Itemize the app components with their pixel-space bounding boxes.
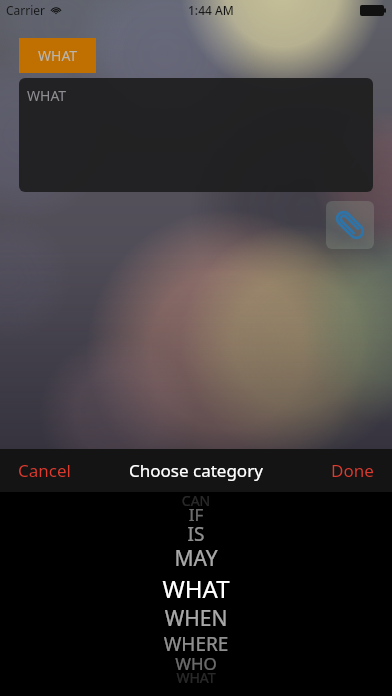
staticText: WHEN [0,604,392,633]
staticText: WHO [0,652,392,675]
staticText: WHAT [38,46,78,65]
button[interactable]: WHAT [19,38,96,73]
staticText: Choose category [129,459,263,482]
staticText: IS [0,521,392,547]
button[interactable]: CAN [0,492,392,696]
staticText: CAN [0,491,392,510]
staticText: WHAT [0,572,392,605]
staticText: 1:44 AM [188,2,234,18]
button[interactable]: Attach file [326,201,374,249]
staticText: IF [0,503,392,526]
staticText: WHAT [27,86,67,105]
staticText: MAY [0,544,392,573]
staticText: Done [331,459,374,482]
button[interactable]: WHAT [19,78,373,192]
staticText: Carrier [6,2,46,18]
button[interactable]: Done [321,453,384,488]
staticText: WHERE [0,631,392,657]
staticText: WHAT [0,668,392,687]
button[interactable]: Cancel [8,453,81,488]
staticText: Cancel [18,459,71,482]
